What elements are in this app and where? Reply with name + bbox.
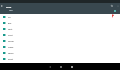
staticText: Mail [6,5,12,8]
button[interactable]: Sent [0,26,120,32]
staticText: Chat [8,34,13,37]
button[interactable]: Recent apps [66,63,77,70]
staticText: Spam [8,52,14,55]
staticText: Trash [8,46,14,49]
button[interactable]: Draft [0,56,120,62]
button[interactable]: All [0,14,120,20]
button[interactable]: Trash [0,44,120,50]
button[interactable]: Bin [0,20,120,26]
button[interactable]: Home [55,63,66,70]
staticText: Tab [9,9,13,12]
staticText: All [8,16,11,19]
staticText: Sent [8,28,13,31]
button[interactable]: More options [115,3,120,9]
staticText: Bin [8,22,12,25]
button[interactable]: Search [109,3,115,9]
button[interactable]: Navigate up [0,3,4,9]
button[interactable]: Chat [0,32,120,38]
button[interactable]: Spam [0,50,120,56]
staticText: Social [8,40,14,43]
button[interactable]: Back [44,63,55,70]
button[interactable]: Social [0,38,120,44]
staticText: Draft [8,58,14,61]
